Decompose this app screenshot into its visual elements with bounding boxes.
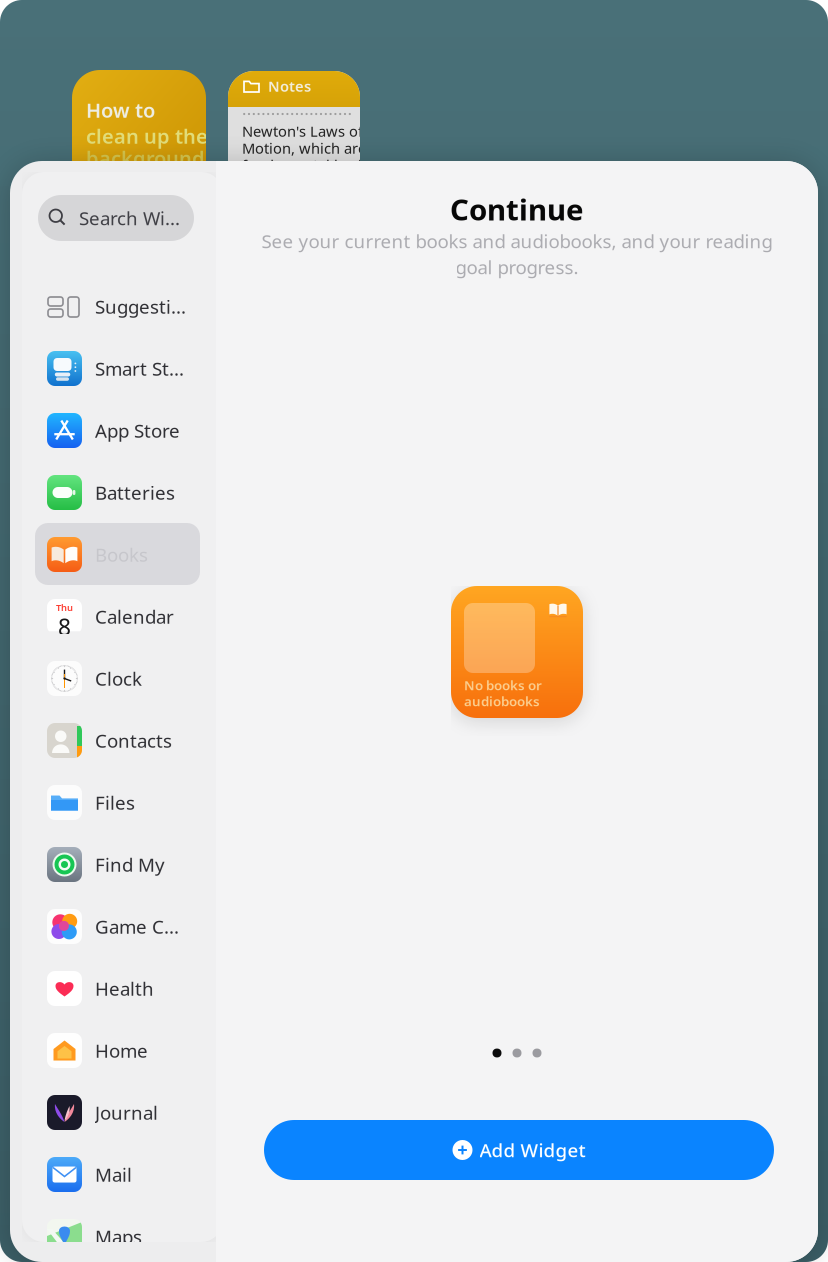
button[interactable]: Search Wi... <box>38 195 194 241</box>
staticText: Notes <box>268 76 311 96</box>
button[interactable]: Mail <box>22 1143 223 1205</box>
staticText: Add Widget <box>479 1138 585 1162</box>
staticText: Newton's Laws of <box>242 121 363 141</box>
button[interactable]: Add Widget <box>264 1120 774 1180</box>
staticText: Maps <box>95 1224 142 1249</box>
staticText: See your current books and audiobooks, a… <box>261 229 772 253</box>
button[interactable]: Suggesti... <box>22 275 223 337</box>
staticText: Books <box>95 542 148 567</box>
staticText: audiobooks <box>464 692 540 710</box>
button[interactable]: Health <box>22 957 223 1019</box>
staticText: Game C... <box>95 914 179 939</box>
button[interactable]: Contacts <box>22 709 223 771</box>
staticText: Health <box>95 976 154 1001</box>
staticText: No books or <box>464 676 542 694</box>
staticText: Home <box>95 1038 148 1063</box>
staticText: Clock <box>95 666 142 691</box>
staticText: Search Wi... <box>79 206 180 230</box>
staticText: Batteries <box>95 480 175 505</box>
staticText: clean up the <box>86 123 208 149</box>
staticText: Smart St... <box>95 356 184 381</box>
staticText: App Store <box>95 418 180 443</box>
staticText: fundamental basic <box>242 155 369 175</box>
button[interactable]: Smart St... <box>22 337 223 399</box>
button[interactable]: Home <box>22 1019 223 1081</box>
staticText: Find My <box>95 852 165 877</box>
button[interactable]: Batteries <box>22 461 223 523</box>
staticText: background <box>86 145 205 171</box>
button[interactable]: Books <box>22 523 223 585</box>
staticText: Suggesti... <box>95 294 186 319</box>
staticText: Files <box>95 790 135 815</box>
staticText: 8 <box>58 612 71 642</box>
button[interactable]: Files <box>22 771 223 833</box>
button[interactable]: Thu <box>22 585 223 647</box>
staticText: Journal <box>95 1100 158 1125</box>
button[interactable]: App Store <box>22 399 223 461</box>
staticText: Thu <box>56 601 73 614</box>
staticText: Continue <box>450 189 584 228</box>
staticText: Motion, which are <box>242 138 366 158</box>
staticText: How to <box>86 97 155 123</box>
staticText: Mail <box>95 1162 132 1187</box>
staticText: Contacts <box>95 728 172 753</box>
button[interactable]: Maps <box>22 1205 223 1262</box>
button[interactable]: Clock <box>22 647 223 709</box>
button[interactable]: Game C... <box>22 895 223 957</box>
button[interactable]: Journal <box>22 1081 223 1143</box>
staticText: Calendar <box>95 604 174 629</box>
staticText: goal progress. <box>455 255 578 279</box>
button[interactable]: Find My <box>22 833 223 895</box>
